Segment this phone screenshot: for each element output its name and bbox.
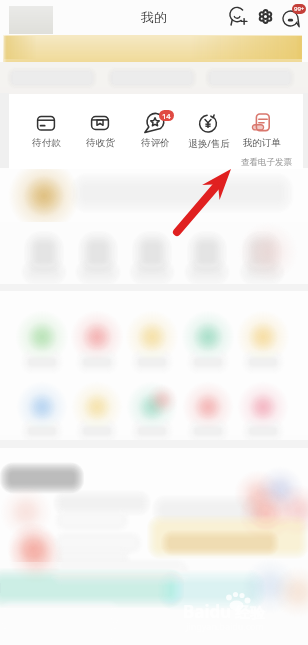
button[interactable]: 退换/售后 [182,94,236,152]
staticText: Baidu [183,600,232,623]
staticText: 待收货 [86,137,115,149]
staticText: 14 [162,111,171,121]
button[interactable]: Messages [279,2,307,30]
button[interactable]: Settings [251,2,279,30]
staticText: 我的 [141,9,167,25]
button[interactable]: 待收货 [73,94,127,152]
staticText: 99+ [294,5,305,13]
button[interactable]: 待付款 [19,94,73,152]
staticText: 退换/售后 [188,137,230,150]
button[interactable]: 我的订单 [235,94,289,152]
button[interactable]: 14 [128,94,182,152]
button[interactable]: Add friend [223,2,251,30]
staticText: 经验 [235,604,265,623]
button[interactable]: 查看电子发票 [241,157,292,168]
staticText: 我的订单 [243,137,281,149]
staticText: 待付款 [32,137,61,149]
staticText: 待评价 [141,137,170,149]
